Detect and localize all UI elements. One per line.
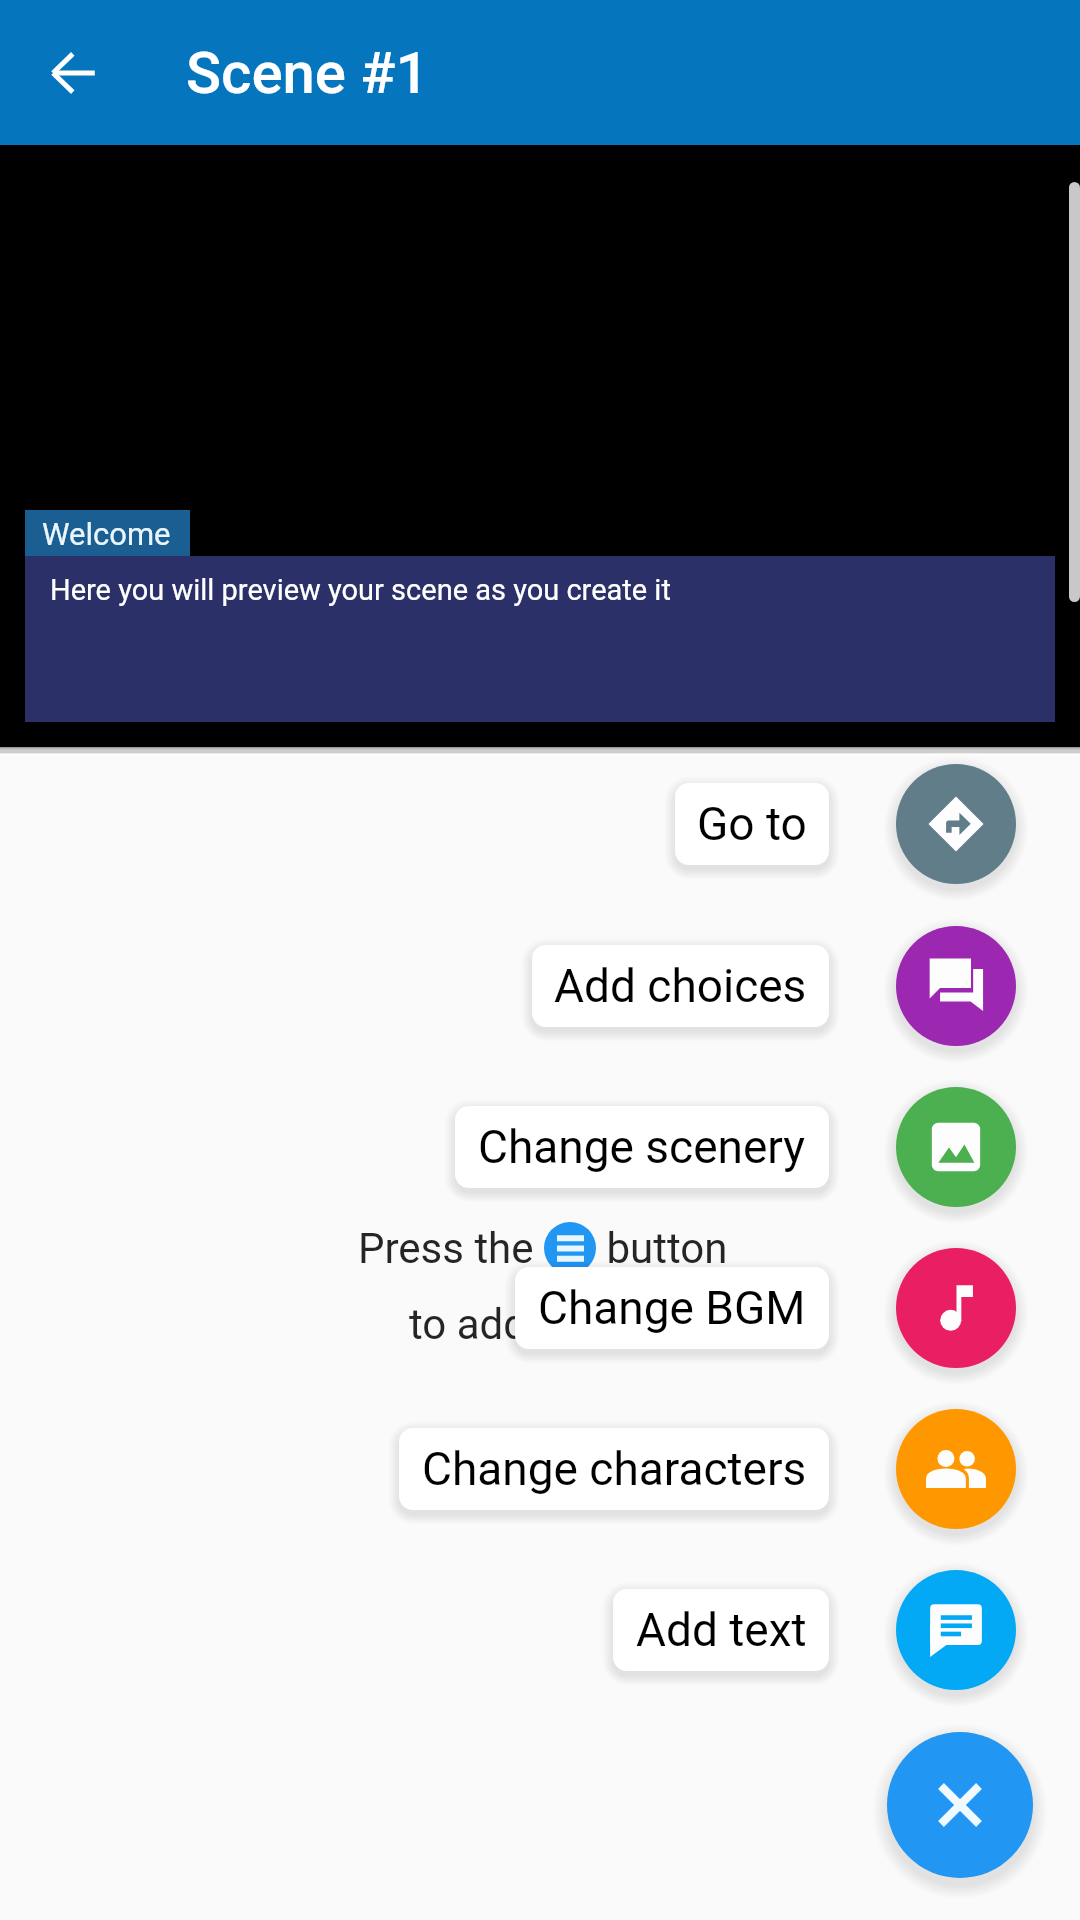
button[interactable]: Add choices — [896, 926, 1016, 1046]
staticText: Scene #1 — [186, 39, 429, 107]
staticText: Add text — [636, 1603, 807, 1657]
button[interactable]: Change characters — [896, 1409, 1016, 1529]
button[interactable]: Navigate up — [26, 25, 122, 121]
button[interactable]: Go to — [896, 764, 1016, 884]
button[interactable]: Add text — [896, 1570, 1016, 1690]
button[interactable]: Add choices — [532, 945, 829, 1027]
staticText: Here you will preview your scene as you … — [50, 573, 671, 607]
staticText: Change BGM — [538, 1281, 806, 1335]
button[interactable]: Change scenery — [455, 1106, 829, 1188]
staticText: button — [596, 1224, 728, 1273]
button[interactable]: Go to — [675, 783, 829, 865]
staticText: Welcome — [42, 516, 171, 552]
button[interactable]: Change scenery — [896, 1087, 1016, 1207]
staticText: Go to — [697, 797, 807, 851]
staticText: Change characters — [422, 1442, 807, 1496]
button[interactable]: Close menu — [887, 1732, 1033, 1878]
button[interactable]: Add text — [613, 1589, 829, 1671]
staticText: Press the — [358, 1224, 544, 1273]
staticText: to add actions — [409, 1300, 675, 1349]
staticText: Change scenery — [478, 1120, 806, 1174]
staticText: Add choices — [554, 959, 807, 1013]
button[interactable]: Change BGM — [515, 1267, 829, 1349]
button[interactable]: Change BGM — [896, 1248, 1016, 1368]
button[interactable]: Change characters — [399, 1428, 829, 1510]
